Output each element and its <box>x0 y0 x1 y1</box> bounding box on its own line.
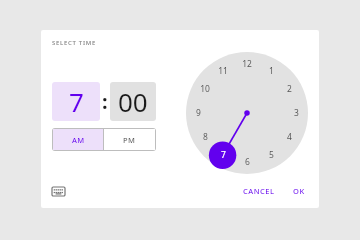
staticText: 00 <box>118 84 148 119</box>
staticText: 5 <box>269 149 274 161</box>
staticText: AM <box>72 135 85 145</box>
staticText: 3 <box>294 107 299 119</box>
staticText: 12 <box>242 58 252 70</box>
staticText: 6 <box>245 156 250 168</box>
button[interactable]: OK <box>289 183 309 199</box>
staticText: 4 <box>287 131 292 143</box>
staticText: CANCEL <box>243 186 275 196</box>
staticText: 7 <box>221 149 226 161</box>
staticText: 11 <box>218 65 228 77</box>
staticText: 8 <box>203 131 208 143</box>
button[interactable]: 00 <box>110 82 156 121</box>
staticText: 7 <box>69 84 84 119</box>
staticText: 9 <box>196 107 201 119</box>
button[interactable]: 7 <box>52 82 100 121</box>
staticText: SELECT TIME <box>52 39 96 47</box>
staticText: PM <box>123 135 136 145</box>
button[interactable]: PM <box>104 129 155 150</box>
button[interactable]: Switch to text input <box>49 182 67 200</box>
staticText: 1 <box>269 65 274 77</box>
button[interactable]: AM <box>53 129 103 150</box>
button[interactable]: 12 <box>186 52 308 174</box>
staticText: 10 <box>200 83 210 95</box>
button[interactable]: CANCEL <box>239 183 279 199</box>
staticText: 2 <box>287 83 292 95</box>
staticText: : <box>102 88 108 115</box>
staticText: OK <box>293 186 305 196</box>
